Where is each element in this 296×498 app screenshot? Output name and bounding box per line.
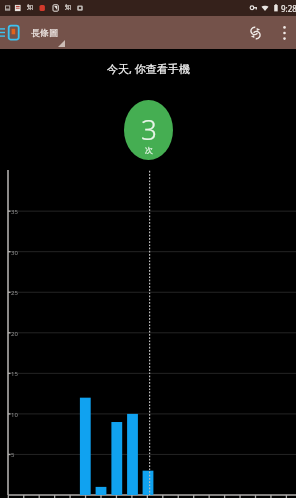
- staticText: 知: [65, 3, 71, 11]
- button[interactable]: Daily phone unlock bar chart: [0, 0, 296, 498]
- button[interactable]: 3: [124, 100, 173, 160]
- button[interactable]: More options: [272, 16, 296, 49]
- staticText: 30: [11, 249, 18, 257]
- staticText: 今天, 你查看手機: [107, 61, 190, 75]
- staticText: 35: [11, 208, 18, 216]
- staticText: 25: [11, 289, 18, 297]
- staticText: 20: [11, 330, 18, 338]
- staticText: 知: [27, 3, 33, 11]
- button[interactable]: 長條圖: [29, 16, 71, 49]
- staticText: 次: [145, 145, 153, 155]
- staticText: 3: [141, 110, 157, 148]
- staticText: 5: [11, 451, 15, 459]
- staticText: 長條圖: [31, 27, 58, 38]
- button[interactable]: Open navigation drawer: [0, 16, 29, 49]
- button[interactable]: Refresh: [238, 16, 272, 49]
- staticText: 9:28: [281, 3, 296, 14]
- staticText: 10: [11, 411, 18, 419]
- staticText: 15: [11, 370, 18, 378]
